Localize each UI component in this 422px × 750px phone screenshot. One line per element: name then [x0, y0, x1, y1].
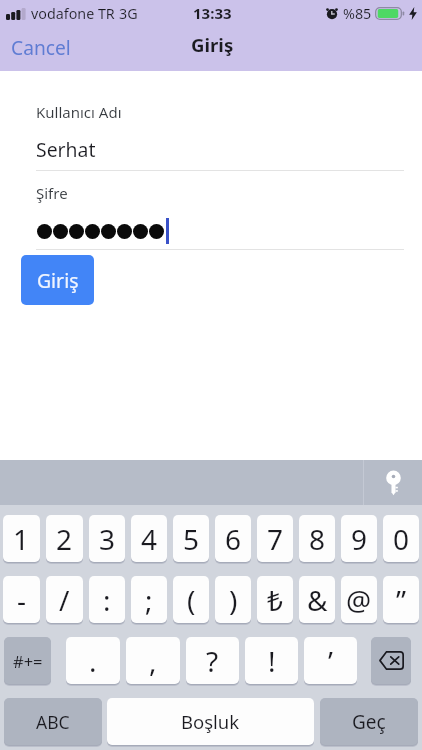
button[interactable]: 3	[89, 515, 125, 562]
button[interactable]: 0	[383, 515, 419, 562]
staticText: 1	[13, 520, 30, 558]
staticText: Serhat	[36, 136, 96, 162]
button[interactable]: Geç	[320, 698, 418, 745]
button[interactable]: ABC	[4, 698, 102, 745]
button[interactable]: 2	[46, 515, 83, 562]
button[interactable]: :	[89, 576, 125, 623]
staticText: 5	[183, 520, 200, 558]
staticText: Şifre	[36, 183, 68, 203]
button[interactable]: ₺	[257, 576, 293, 623]
button[interactable]: Cancel	[11, 34, 71, 60]
button[interactable]: &	[299, 576, 335, 623]
staticText: %85	[343, 4, 372, 23]
staticText: ?	[206, 642, 219, 680]
button[interactable]: 8	[299, 515, 335, 562]
staticText: vodafone TR	[31, 4, 115, 23]
staticText: ”	[396, 581, 407, 619]
button[interactable]: 4	[131, 515, 167, 562]
button[interactable]: 1	[3, 515, 40, 562]
button[interactable]: !	[245, 637, 298, 684]
staticText: :	[103, 581, 111, 619]
staticText: 7	[267, 520, 284, 558]
staticText: 8	[309, 520, 326, 558]
button[interactable]: #+=	[4, 637, 51, 684]
staticText: ABC	[36, 710, 70, 734]
staticText: -	[17, 581, 27, 619]
button[interactable]: 9	[341, 515, 377, 562]
staticText: 6	[225, 520, 242, 558]
staticText: 13:33	[193, 3, 232, 23]
staticText: Kullanıcı Adı	[36, 102, 122, 122]
staticText: /	[59, 581, 70, 619]
button[interactable]: .	[66, 637, 120, 684]
staticText: Giriş	[37, 267, 79, 293]
button[interactable]: )	[215, 576, 251, 623]
button[interactable]: ,	[126, 637, 180, 684]
button[interactable]: @	[341, 576, 377, 623]
staticText: ,	[149, 642, 157, 680]
staticText: ’	[328, 642, 333, 680]
button[interactable]: Boşluk	[107, 698, 314, 745]
staticText: Giriş	[191, 32, 234, 57]
staticText: 0	[393, 520, 410, 558]
button[interactable]: ?	[186, 637, 239, 684]
button[interactable]: /	[46, 576, 83, 623]
button[interactable]	[371, 637, 411, 684]
staticText: !	[268, 642, 276, 680]
button[interactable]: -	[3, 576, 40, 623]
staticText: 3G	[119, 4, 138, 23]
button[interactable]: Passwords	[364, 460, 422, 505]
button[interactable]: ;	[131, 576, 167, 623]
staticText: #+=	[13, 650, 43, 672]
button[interactable]: 6	[215, 515, 251, 562]
staticText: )	[229, 581, 238, 619]
staticText: Boşluk	[181, 709, 240, 734]
button[interactable]: ’	[304, 637, 357, 684]
staticText: (	[187, 581, 196, 619]
button[interactable]: 5	[173, 515, 209, 562]
button[interactable]: Giriş	[21, 255, 94, 305]
staticText: 3	[99, 520, 116, 558]
staticText: Geç	[352, 709, 386, 735]
button[interactable]: 7	[257, 515, 293, 562]
staticText: 2	[56, 520, 73, 558]
staticText: 9	[351, 520, 368, 558]
staticText: 4	[141, 520, 158, 558]
staticText: Cancel	[11, 34, 71, 60]
staticText: ₺	[267, 581, 284, 619]
staticText: .	[89, 642, 97, 680]
button[interactable]: ”	[383, 576, 419, 623]
staticText: @	[346, 581, 372, 619]
staticText: ;	[145, 581, 153, 619]
button[interactable]: (	[173, 576, 209, 623]
staticText: &	[307, 581, 328, 619]
